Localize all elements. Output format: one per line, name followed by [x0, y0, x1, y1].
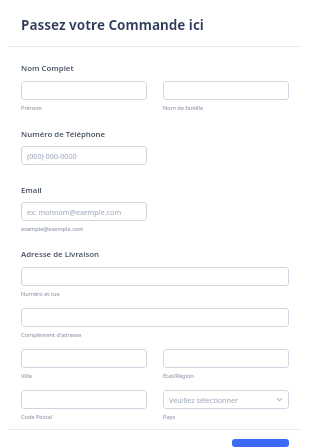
staticText: État/Région	[163, 372, 194, 380]
staticText: Nom de famille	[163, 104, 204, 112]
button[interactable]	[163, 349, 289, 368]
button[interactable]	[21, 267, 289, 286]
button[interactable]	[21, 390, 147, 409]
staticText: Prénom	[21, 104, 42, 112]
button[interactable]	[21, 81, 147, 100]
button[interactable]: ex: monnom@exemple.com	[21, 202, 147, 221]
staticText: Adresse de Livraison	[21, 249, 100, 260]
staticText: Numéro et rue	[21, 290, 60, 298]
button[interactable]: Veuillez sélectionner	[163, 390, 289, 409]
staticText: Nom Complet	[21, 63, 74, 74]
staticText: exemple@exemple.com	[21, 225, 84, 233]
staticText: Code Postal	[21, 413, 53, 421]
button[interactable]	[21, 308, 289, 327]
staticText: Pays	[163, 413, 176, 421]
button[interactable]: (000) 000-0000	[21, 146, 147, 165]
staticText: Complément d'adresse	[21, 331, 82, 339]
staticText: (000) 000-0000	[27, 151, 141, 161]
staticText: ex: monnom@exemple.com	[27, 207, 141, 217]
button[interactable]	[21, 349, 147, 368]
button[interactable]	[163, 81, 289, 100]
staticText: Passez votre Commande ici	[21, 16, 204, 34]
staticText: Numéro de Téléphone	[21, 129, 106, 140]
staticText: Ville	[21, 372, 32, 380]
button[interactable]: Suivant	[232, 439, 289, 447]
staticText: Email	[21, 185, 42, 196]
staticText: Veuillez sélectionner	[169, 395, 276, 405]
